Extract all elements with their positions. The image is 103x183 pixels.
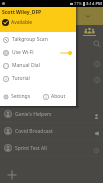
button[interactable]: Contacts <box>84 27 95 35</box>
button[interactable]: Available <box>2 19 33 26</box>
button[interactable]: Settings <box>3 93 31 100</box>
button[interactable]: About <box>43 93 66 100</box>
staticText: Settings <box>11 93 31 100</box>
staticText: 77% <box>74 1 82 6</box>
staticText: Covid Broadcast <box>15 128 53 135</box>
staticText: Use Wi-Fi <box>12 49 34 56</box>
button[interactable]: Add <box>4 167 20 183</box>
button[interactable]: Sprint Test All <box>0 140 103 157</box>
staticText: Talkgroup Scan <box>12 36 48 43</box>
button[interactable]: Use Wi-Fi <box>0 46 76 59</box>
staticText: About <box>51 93 66 100</box>
button[interactable]: Covid Broadcast <box>0 123 103 140</box>
staticText: Sprint Test All <box>15 145 47 152</box>
staticText: 3:14 PM <box>86 1 102 7</box>
staticText: Scott Wiley_DFP <box>2 9 42 16</box>
button[interactable]: Expand <box>84 12 92 20</box>
staticText: Available <box>11 19 33 26</box>
button[interactable]: Talkgroup Scan <box>0 33 76 46</box>
staticText: Manual Dial <box>12 62 40 69</box>
button[interactable]: Manual Dial <box>0 59 76 72</box>
staticText: Tutorial <box>12 75 30 82</box>
button[interactable]: Genie's Helpers <box>0 106 103 123</box>
staticText: Genie's Helpers <box>15 111 52 118</box>
button[interactable]: Search <box>93 40 101 48</box>
button[interactable]: Tutorial <box>0 72 76 85</box>
